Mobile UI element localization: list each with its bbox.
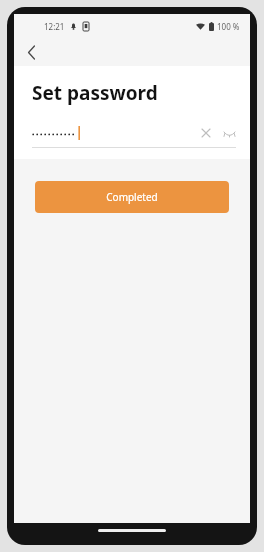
staticText: Completed	[106, 190, 158, 204]
staticText: 12:21	[44, 21, 65, 32]
button[interactable]: Completed	[35, 181, 229, 213]
button[interactable]: Clear password	[198, 125, 214, 141]
button[interactable]: Back	[18, 39, 44, 65]
button[interactable]: Show password	[220, 125, 238, 141]
staticText: Set password	[32, 80, 158, 106]
staticText: 100 %	[217, 21, 240, 32]
